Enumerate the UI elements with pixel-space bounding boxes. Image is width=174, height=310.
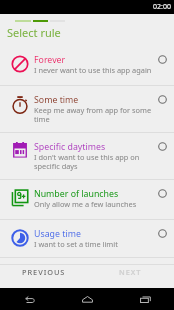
staticText: Keep me away from app for some time bbox=[34, 106, 154, 124]
staticText: 02:00 bbox=[153, 2, 171, 12]
staticText: Specific daytimes bbox=[34, 141, 106, 153]
staticText: PREVIOUS bbox=[22, 267, 66, 277]
staticText: Some time bbox=[34, 94, 79, 106]
button[interactable]: Forever bbox=[0, 46, 174, 85]
button[interactable]: Home bbox=[58, 288, 116, 310]
button[interactable]: Recents bbox=[116, 288, 174, 310]
button[interactable]: NEXT bbox=[87, 265, 174, 288]
button[interactable]: Some time bbox=[0, 86, 174, 132]
staticText: Select rule bbox=[7, 25, 61, 40]
button[interactable]: Number of launches bbox=[0, 180, 174, 219]
staticText: Usage time bbox=[34, 228, 81, 240]
button[interactable]: PREVIOUS bbox=[0, 265, 87, 288]
staticText: NEXT bbox=[119, 267, 142, 277]
button[interactable]: Usage time bbox=[0, 220, 174, 257]
staticText: I don't want to use this app on specific… bbox=[34, 153, 154, 171]
staticText: I never want to use this app again bbox=[34, 66, 152, 75]
button[interactable]: Specific daytimes bbox=[0, 133, 174, 179]
staticText: I want to set a time limit bbox=[34, 240, 118, 249]
staticText: Number of launches bbox=[34, 188, 119, 200]
button[interactable]: Back bbox=[0, 288, 58, 310]
staticText: Forever bbox=[34, 54, 66, 66]
staticText: Only allow me a few launches bbox=[34, 200, 137, 209]
